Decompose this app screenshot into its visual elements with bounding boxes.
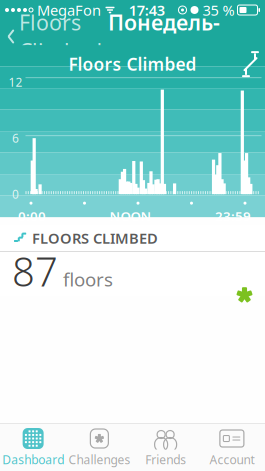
staticText: 0 <box>12 186 19 202</box>
button[interactable]: Friends <box>132 423 199 471</box>
staticText: 35 % <box>202 0 234 20</box>
staticText: 0:00 <box>18 207 46 225</box>
button[interactable]: Floors Climbed <box>0 2 102 71</box>
staticText: 23:59 <box>215 207 251 225</box>
staticText: Friends <box>145 451 186 467</box>
button[interactable]: Dashboard <box>0 423 66 471</box>
button[interactable]: 87 <box>0 252 265 296</box>
staticText: Dashboard <box>2 451 64 467</box>
staticText: Floors Climbed <box>68 53 196 76</box>
button[interactable]: Account <box>199 423 265 471</box>
staticText: 17:43 <box>129 0 165 20</box>
staticText: Понедельник <box>108 8 220 65</box>
staticText: Challenges <box>68 451 130 467</box>
button[interactable]: Challenges <box>66 423 132 471</box>
staticText: 12 <box>8 74 22 90</box>
button[interactable]: Expand chart <box>236 50 265 79</box>
staticText: FLOORS CLIMBED <box>32 228 158 248</box>
staticText: 6 <box>12 130 19 146</box>
staticText: 87 <box>12 244 58 298</box>
staticText: MegaFon <box>37 0 101 20</box>
staticText: Account <box>209 451 254 467</box>
staticText: floors <box>63 267 113 292</box>
staticText: NOON <box>109 207 151 225</box>
staticText: Floors Climbed <box>19 8 102 65</box>
